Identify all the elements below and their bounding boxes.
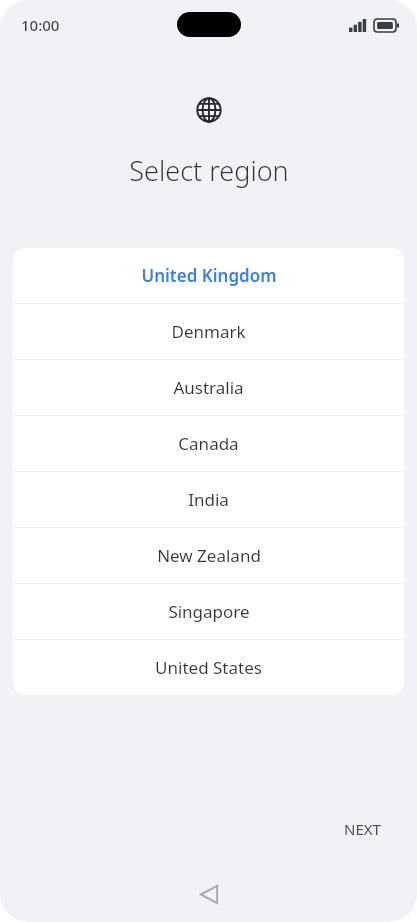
- button[interactable]: New Zealand: [13, 528, 404, 583]
- staticText: Canada: [178, 432, 239, 455]
- button[interactable]: Australia: [13, 360, 404, 415]
- button[interactable]: Back: [185, 870, 233, 918]
- button[interactable]: United Kingdom: [13, 248, 404, 303]
- staticText: United Kingdom: [141, 264, 277, 287]
- staticText: Denmark: [171, 320, 246, 343]
- button[interactable]: United States: [13, 640, 404, 695]
- staticText: Singapore: [168, 600, 250, 623]
- staticText: New Zealand: [157, 544, 261, 567]
- button[interactable]: Denmark: [13, 304, 404, 359]
- staticText: United States: [155, 656, 262, 679]
- button[interactable]: Canada: [13, 416, 404, 471]
- button[interactable]: Singapore: [13, 584, 404, 639]
- staticText: Australia: [173, 376, 244, 399]
- button[interactable]: NEXT: [334, 811, 391, 847]
- staticText: NEXT: [344, 819, 381, 839]
- button[interactable]: India: [13, 472, 404, 527]
- staticText: 10:00: [21, 15, 60, 35]
- staticText: Select region: [129, 152, 289, 189]
- staticText: India: [188, 488, 229, 511]
